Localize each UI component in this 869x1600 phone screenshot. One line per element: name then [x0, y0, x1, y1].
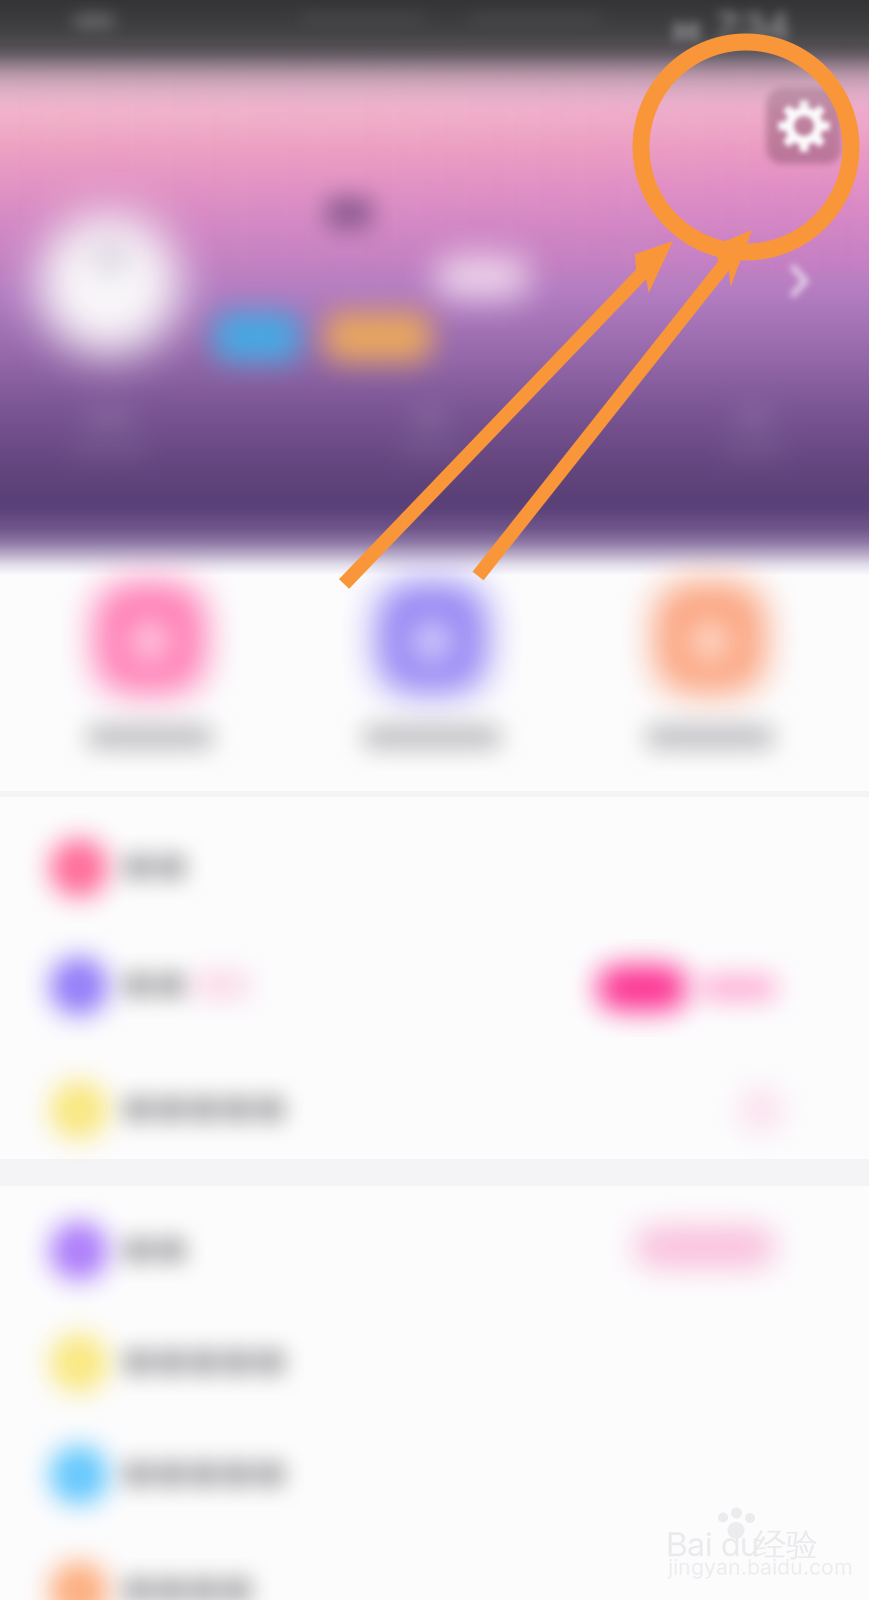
- staticText: Bai du: [666, 1524, 759, 1564]
- button[interactable]: [0, 810, 869, 926]
- button[interactable]: [0, 1193, 869, 1309]
- button[interactable]: Settings: [766, 88, 842, 164]
- button[interactable]: [0, 1305, 869, 1421]
- button[interactable]: Profile details: [790, 262, 812, 300]
- button[interactable]: [0, 928, 869, 1044]
- staticText: 经验: [754, 1525, 818, 1565]
- button[interactable]: [0, 1533, 869, 1600]
- button[interactable]: [48, 575, 252, 791]
- staticText: jingyan.baidu.com: [668, 1554, 853, 1580]
- button[interactable]: [0, 1417, 869, 1533]
- button[interactable]: [608, 575, 812, 791]
- button[interactable]: [330, 575, 534, 791]
- button[interactable]: [0, 1052, 869, 1168]
